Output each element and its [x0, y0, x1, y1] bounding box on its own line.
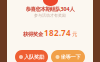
- staticText: 恭喜您本期组队304人: [25, 5, 74, 13]
- staticText: 坐等一下: [60, 54, 80, 60]
- staticText: 参与活动才有奖励: [34, 13, 66, 18]
- staticText: 获得奖金: [23, 31, 43, 38]
- staticText: 元: [72, 31, 77, 38]
- button[interactable]: 入队奖励: [15, 50, 48, 62]
- staticText: 入队奖励: [24, 54, 44, 60]
- button[interactable]: 坐等一下: [51, 50, 85, 62]
- staticText: 182.74: [44, 28, 71, 38]
